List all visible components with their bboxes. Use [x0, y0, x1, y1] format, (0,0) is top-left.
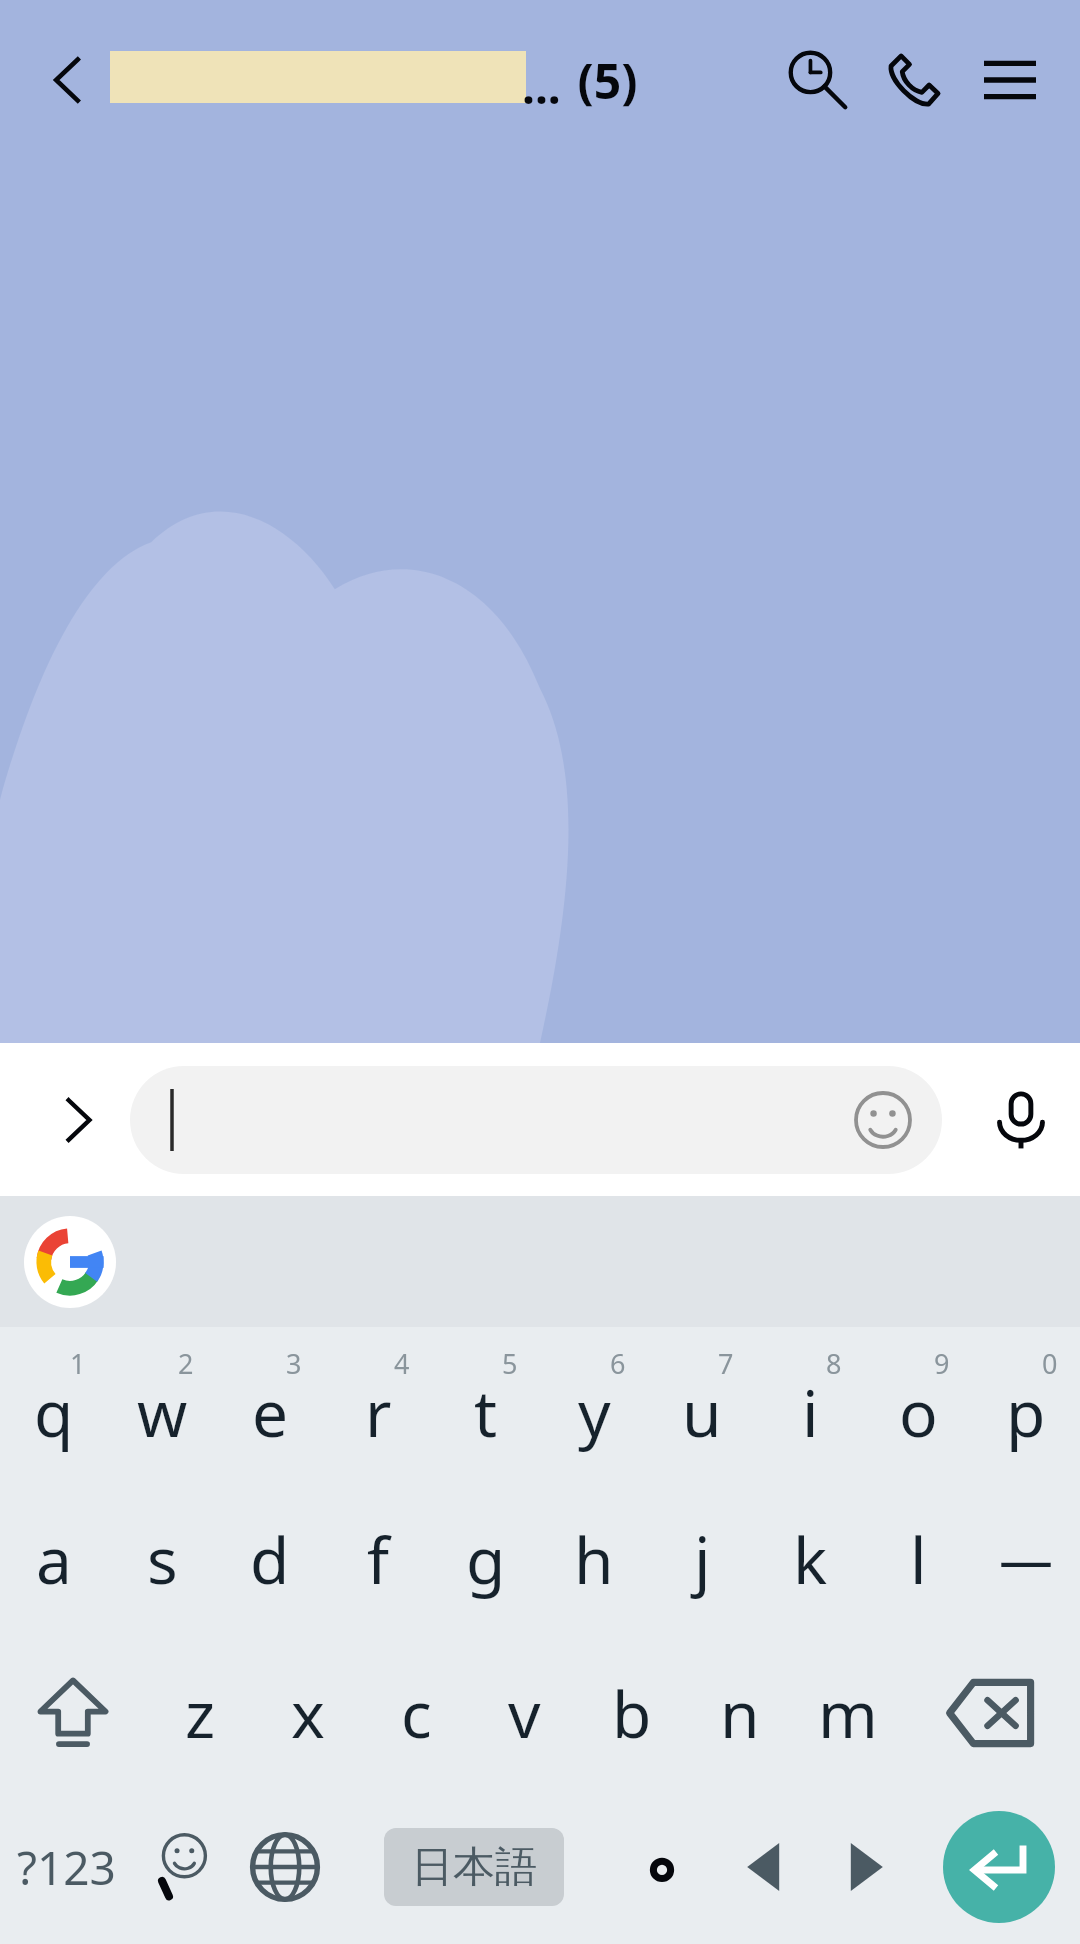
button[interactable]	[611, 1790, 713, 1944]
button[interactable]: Enter	[917, 1790, 1080, 1944]
staticText: —	[999, 1522, 1053, 1596]
button[interactable]: k	[756, 1482, 864, 1636]
staticText: c	[401, 1670, 432, 1757]
button[interactable]: 日本語	[336, 1790, 611, 1944]
staticText: s	[147, 1516, 178, 1603]
button[interactable]: 4	[324, 1327, 432, 1482]
staticText: 日本語	[411, 1841, 537, 1894]
button[interactable]: 3	[216, 1327, 324, 1482]
staticText: b	[612, 1670, 652, 1757]
button[interactable]: x	[254, 1636, 362, 1790]
staticText: k	[793, 1516, 828, 1603]
button[interactable]: d	[216, 1482, 324, 1636]
staticText: i	[802, 1369, 819, 1456]
staticText: f	[367, 1516, 390, 1603]
button[interactable]: m	[794, 1636, 902, 1790]
staticText: 2	[178, 1345, 194, 1382]
staticText: 9	[934, 1345, 950, 1382]
staticText: y	[578, 1369, 611, 1456]
button[interactable]: Voice input	[962, 1061, 1080, 1179]
staticText: e	[252, 1369, 289, 1456]
button[interactable]: a	[0, 1482, 108, 1636]
button[interactable]: f	[324, 1482, 432, 1636]
button[interactable]: Move cursor right	[815, 1790, 917, 1944]
staticText: ?123	[17, 1836, 116, 1899]
button[interactable]: 7	[648, 1327, 756, 1482]
staticText: p	[1006, 1369, 1046, 1456]
staticText: 4	[394, 1345, 410, 1382]
staticText: h	[574, 1516, 614, 1603]
staticText: n	[720, 1670, 760, 1757]
button[interactable]: Move cursor left	[713, 1790, 815, 1944]
button[interactable]: Emoji	[132, 1790, 234, 1944]
staticText: z	[185, 1670, 216, 1757]
button[interactable]: Change language	[234, 1790, 336, 1944]
button[interactable]: g	[432, 1482, 540, 1636]
staticText: ...	[522, 55, 561, 118]
staticText: t	[474, 1369, 498, 1456]
button[interactable]: s	[108, 1482, 216, 1636]
button[interactable]: —	[972, 1482, 1080, 1636]
button[interactable]: Google	[24, 1216, 116, 1308]
button[interactable]: j	[648, 1482, 756, 1636]
button[interactable]: ...	[110, 15, 770, 145]
staticText: 5	[502, 1345, 518, 1382]
staticText: 7	[718, 1345, 734, 1382]
staticText: l	[910, 1516, 927, 1603]
staticText: q	[34, 1369, 74, 1456]
staticText: g	[466, 1516, 506, 1603]
button[interactable]: v	[470, 1636, 578, 1790]
button[interactable]: Backspace	[902, 1636, 1080, 1790]
staticText: 8	[826, 1345, 842, 1382]
staticText: v	[508, 1670, 541, 1757]
staticText: 1	[70, 1345, 86, 1382]
staticText: r	[365, 1369, 392, 1456]
button[interactable]: h	[540, 1482, 648, 1636]
button[interactable]: Shift	[0, 1636, 146, 1790]
button[interactable]: b	[578, 1636, 686, 1790]
button[interactable]: 2	[108, 1327, 216, 1482]
button[interactable]: c	[362, 1636, 470, 1790]
button[interactable]: n	[686, 1636, 794, 1790]
button[interactable]: 9	[864, 1327, 972, 1482]
staticText: 6	[610, 1345, 626, 1382]
button[interactable]: Call	[866, 32, 962, 128]
staticText: (5)	[565, 48, 638, 113]
button[interactable]: Search history	[770, 32, 866, 128]
button[interactable]: 8	[756, 1327, 864, 1482]
button[interactable]: Back	[26, 38, 110, 122]
button[interactable]: z	[146, 1636, 254, 1790]
staticText: u	[682, 1369, 722, 1456]
button[interactable]: ?123	[0, 1790, 132, 1944]
button[interactable]: Emoji	[130, 1066, 942, 1174]
button[interactable]: 1	[0, 1327, 108, 1482]
staticText: x	[291, 1670, 325, 1757]
staticText: 3	[286, 1345, 302, 1382]
staticText: j	[694, 1516, 711, 1603]
staticText: w	[137, 1369, 188, 1456]
button[interactable]: Expand	[28, 1070, 128, 1170]
button[interactable]: 6	[540, 1327, 648, 1482]
staticText: d	[250, 1516, 290, 1603]
staticText: o	[899, 1369, 938, 1456]
button[interactable]: 0	[972, 1327, 1080, 1482]
button[interactable]: Emoji	[848, 1085, 918, 1155]
button[interactable]: l	[864, 1482, 972, 1636]
staticText: m	[818, 1670, 878, 1757]
button[interactable]: 5	[432, 1327, 540, 1482]
staticText: a	[36, 1516, 72, 1603]
staticText: 0	[1042, 1345, 1058, 1382]
button[interactable]: Menu	[962, 32, 1058, 128]
